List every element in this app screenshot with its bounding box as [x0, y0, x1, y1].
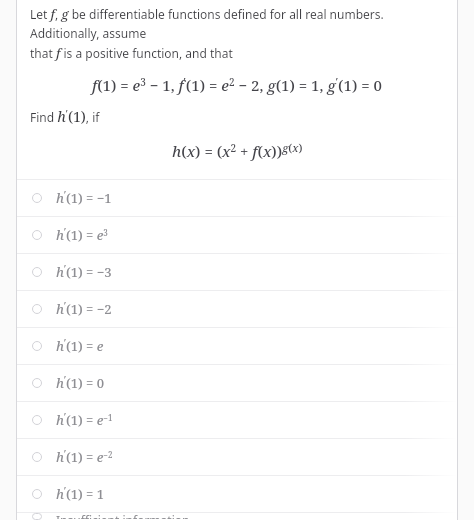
staticText: h′(1) = −1	[56, 188, 112, 207]
button[interactable]: h′(1) = 0	[17, 365, 457, 401]
staticText: Find h′(1), if	[30, 107, 100, 126]
button[interactable]: h′(1) = e	[17, 328, 457, 364]
staticText: h′(1) = 1	[56, 484, 105, 503]
staticText: h′(1) = e3	[56, 225, 108, 244]
button[interactable]: h′(1) = 1	[17, 476, 457, 512]
staticText: that f is a positive function, and that	[30, 44, 233, 62]
staticText: Insufficient information.	[56, 512, 193, 519]
staticText: h(x) = (x2 + f(x))g(x)	[172, 140, 303, 161]
staticText: h′(1) = e	[56, 336, 104, 355]
button[interactable]: h′(1) = e3	[17, 217, 457, 253]
staticText: h′(1) = e−2	[56, 447, 113, 466]
button[interactable]: Insufficient information.	[17, 513, 457, 520]
staticText: f(1) = e3 − 1, f′(1) = e2 − 2, g(1) = 1,…	[92, 74, 382, 95]
button[interactable]: h′(1) = −3	[17, 254, 457, 290]
staticText: h′(1) = −2	[56, 299, 112, 318]
button[interactable]: h′(1) = −1	[17, 180, 457, 216]
staticText: Let f, g be differentiable functions def…	[30, 5, 439, 41]
button[interactable]: h′(1) = −2	[17, 291, 457, 327]
staticText: h′(1) = e−1	[56, 410, 113, 429]
staticText: h′(1) = −3	[56, 262, 112, 281]
button[interactable]: h′(1) = e−2	[17, 439, 457, 475]
staticText: h′(1) = 0	[56, 373, 105, 392]
button[interactable]: h′(1) = e−1	[17, 402, 457, 438]
